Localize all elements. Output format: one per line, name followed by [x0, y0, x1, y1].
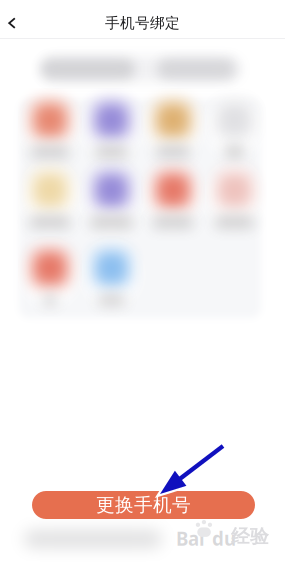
staticText: 手机号绑定	[105, 14, 180, 32]
button[interactable]: 更换手机号	[32, 491, 255, 519]
staticText: Bai	[176, 526, 205, 551]
staticText: du	[212, 526, 236, 551]
button[interactable]: 返回	[0, 0, 24, 39]
staticText: 更换手机号	[96, 493, 191, 516]
staticText: 经验	[231, 525, 269, 548]
